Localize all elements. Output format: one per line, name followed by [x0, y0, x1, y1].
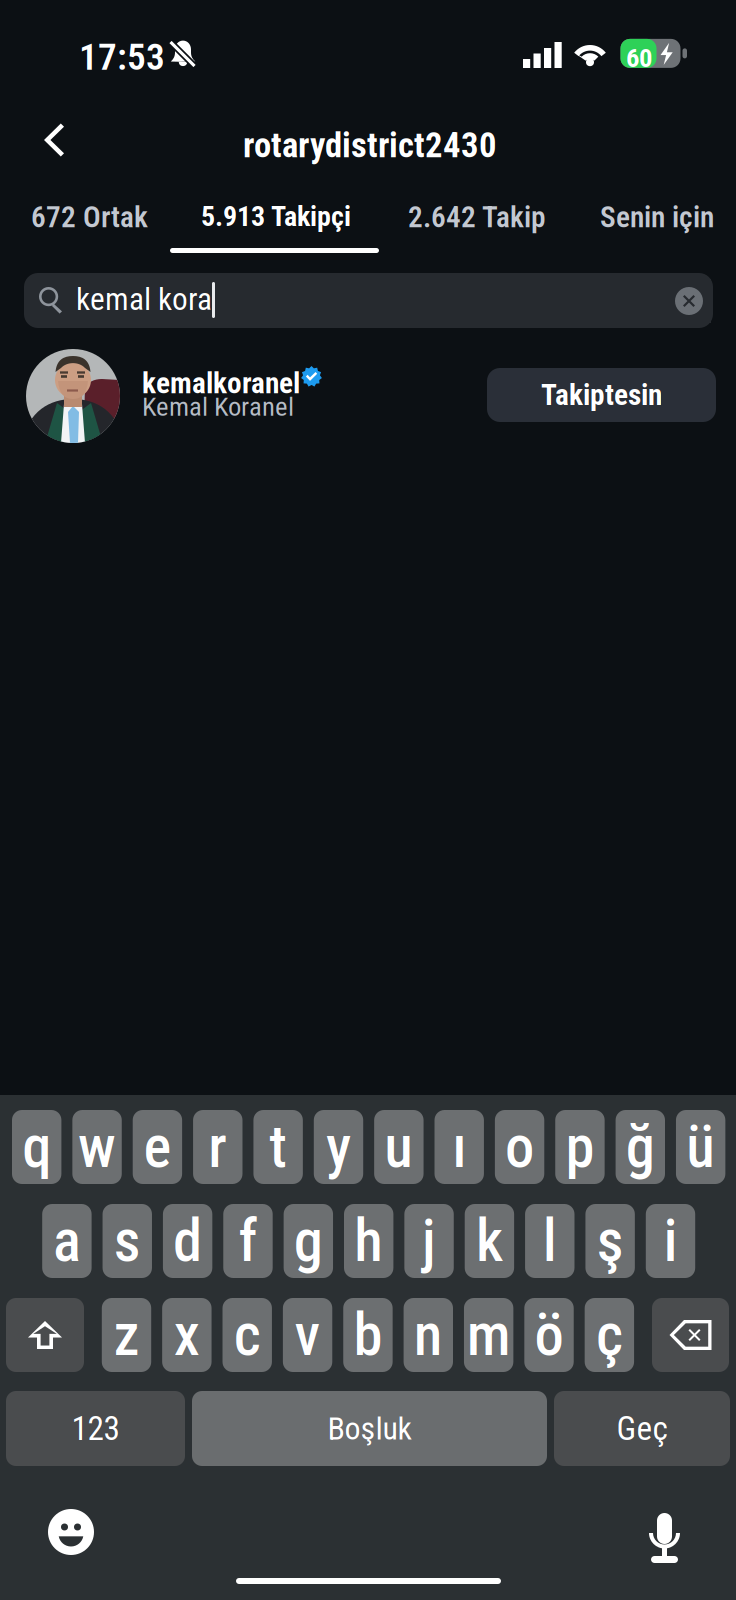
button[interactable]: Shift — [6, 1298, 84, 1372]
button[interactable]: f — [223, 1204, 273, 1278]
staticText: 60 — [626, 42, 652, 74]
button[interactable]: ö — [524, 1298, 574, 1372]
button[interactable]: Geç — [554, 1391, 730, 1466]
button[interactable]: c — [222, 1298, 272, 1372]
staticText: rotarydistrict2430 — [243, 125, 497, 166]
staticText: n — [414, 1301, 443, 1369]
staticText: ı — [452, 1113, 466, 1181]
staticText: ş — [597, 1207, 624, 1275]
button[interactable]: ı — [434, 1110, 484, 1184]
button[interactable]: t — [253, 1110, 303, 1184]
button[interactable]: ç — [585, 1298, 634, 1372]
staticText: r — [208, 1113, 227, 1181]
button[interactable]: g — [284, 1204, 333, 1278]
button[interactable]: y — [314, 1110, 363, 1184]
button[interactable]: i — [646, 1204, 695, 1278]
button[interactable]: Dictation — [645, 1506, 684, 1556]
staticText: l — [543, 1207, 557, 1275]
staticText: w — [78, 1113, 116, 1181]
staticText: h — [354, 1207, 383, 1275]
button[interactable]: d — [163, 1204, 212, 1278]
button[interactable]: r — [193, 1110, 242, 1184]
button[interactable]: 672 Ortak — [21, 190, 169, 244]
button[interactable]: Emoji — [48, 1509, 94, 1555]
staticText: b — [353, 1301, 382, 1369]
staticText: s — [114, 1207, 141, 1275]
staticText: a — [53, 1207, 81, 1275]
staticText: Geç — [616, 1409, 667, 1448]
staticText: 17:53 — [79, 35, 165, 79]
staticText: 2.642 Takip — [408, 200, 546, 234]
staticText: j — [422, 1207, 436, 1275]
button[interactable]: ü — [676, 1110, 725, 1184]
button[interactable]: o — [495, 1110, 544, 1184]
button[interactable]: b — [343, 1298, 393, 1372]
button[interactable]: k — [465, 1204, 514, 1278]
staticText: y — [326, 1113, 351, 1181]
button[interactable]: z — [102, 1298, 151, 1372]
button[interactable]: Backspace — [652, 1298, 729, 1372]
staticText: ç — [596, 1301, 623, 1369]
button[interactable]: a — [42, 1204, 92, 1278]
staticText: q — [22, 1113, 51, 1181]
staticText: g — [294, 1207, 323, 1275]
staticText: k — [476, 1207, 503, 1275]
button[interactable]: Senin için — [590, 190, 736, 244]
button[interactable]: Takiptesin — [487, 368, 716, 422]
staticText: m — [467, 1301, 511, 1369]
button[interactable]: n — [404, 1298, 453, 1372]
button[interactable]: ğ — [616, 1110, 665, 1184]
button[interactable]: m — [464, 1298, 513, 1372]
button[interactable]: Clear search — [667, 279, 711, 323]
staticText: kemal kora — [76, 281, 212, 318]
staticText: z — [113, 1301, 139, 1369]
staticText: kemalkoranel — [142, 366, 300, 400]
staticText: Senin için — [600, 200, 714, 234]
staticText: u — [384, 1113, 413, 1181]
button[interactable]: u — [374, 1110, 424, 1184]
button[interactable]: Back — [21, 112, 83, 168]
button[interactable]: Boşluk — [192, 1391, 547, 1466]
button[interactable]: ş — [585, 1204, 635, 1278]
button[interactable]: 2.642 Takip — [398, 190, 570, 244]
button[interactable]: h — [344, 1204, 393, 1278]
staticText: 672 Ortak — [31, 200, 148, 234]
staticText: Takiptesin — [541, 378, 662, 412]
staticText: Boşluk — [327, 1410, 411, 1447]
staticText: p — [565, 1113, 594, 1181]
staticText: c — [234, 1301, 261, 1369]
button[interactable]: p — [555, 1110, 605, 1184]
button[interactable]: j — [404, 1204, 454, 1278]
button[interactable]: w — [72, 1110, 122, 1184]
button[interactable]: v — [283, 1298, 332, 1372]
staticText: d — [173, 1207, 202, 1275]
staticText: 123 — [71, 1409, 119, 1448]
staticText: v — [295, 1301, 321, 1369]
button[interactable]: 123 — [6, 1391, 185, 1466]
button[interactable]: kemalkoranel — [26, 347, 466, 447]
button[interactable]: s — [103, 1204, 152, 1278]
staticText: x — [174, 1301, 200, 1369]
staticText: o — [505, 1113, 534, 1181]
staticText: ü — [686, 1113, 715, 1181]
staticText: i — [663, 1207, 677, 1275]
staticText: 5.913 Takipçi — [201, 200, 351, 233]
staticText: ğ — [626, 1113, 655, 1181]
staticText: Kemal Koranel — [142, 391, 294, 422]
button[interactable]: l — [525, 1204, 574, 1278]
button[interactable]: 5.913 Takipçi — [191, 190, 380, 244]
button[interactable]: e — [133, 1110, 182, 1184]
staticText: t — [269, 1113, 287, 1181]
staticText: ö — [534, 1301, 563, 1369]
button[interactable]: x — [162, 1298, 212, 1372]
staticText: f — [238, 1207, 257, 1275]
staticText: e — [143, 1113, 171, 1181]
button[interactable]: q — [12, 1110, 61, 1184]
